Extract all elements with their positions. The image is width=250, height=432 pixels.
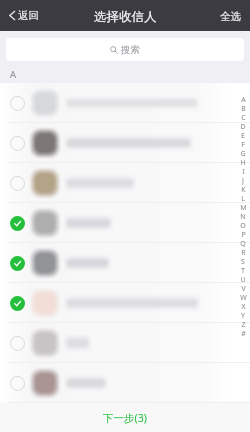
staticText: T: [241, 266, 245, 275]
staticText: Y: [241, 311, 245, 320]
button[interactable]: [0, 203, 250, 243]
staticText: Q: [240, 239, 246, 248]
staticText: X: [241, 302, 246, 311]
button[interactable]: 全选: [209, 1, 250, 30]
staticText: U: [240, 275, 246, 284]
staticText: F: [241, 140, 245, 149]
button[interactable]: [0, 123, 250, 163]
staticText: N: [240, 212, 246, 221]
button[interactable]: [0, 323, 250, 363]
staticText: 返回: [18, 9, 39, 22]
staticText: H: [240, 158, 246, 167]
staticText: M: [240, 203, 247, 212]
staticText: L: [241, 194, 245, 203]
staticText: K: [241, 185, 246, 194]
staticText: 选择收信人: [94, 9, 157, 25]
staticText: 搜索: [121, 44, 140, 56]
staticText: 下一步(3): [103, 411, 147, 425]
button[interactable]: 下一步(3): [0, 403, 250, 432]
staticText: C: [241, 113, 246, 122]
button[interactable]: 搜索: [6, 38, 244, 61]
staticText: B: [241, 104, 246, 113]
staticText: V: [241, 284, 246, 293]
staticText: Z: [241, 320, 246, 329]
staticText: A: [241, 95, 246, 104]
staticText: I: [242, 167, 245, 176]
staticText: S: [241, 257, 245, 266]
staticText: W: [240, 293, 247, 302]
staticText: P: [241, 230, 246, 239]
button[interactable]: [0, 163, 250, 203]
button[interactable]: [0, 363, 250, 403]
staticText: R: [241, 248, 246, 257]
button[interactable]: [0, 283, 250, 323]
staticText: G: [240, 149, 246, 158]
staticText: J: [242, 176, 244, 185]
staticText: #: [241, 329, 246, 338]
staticText: D: [240, 122, 246, 131]
staticText: E: [241, 131, 245, 140]
staticText: A: [10, 68, 17, 81]
staticText: 全选: [220, 10, 241, 23]
button[interactable]: [0, 243, 250, 283]
button[interactable]: 返回: [0, 1, 49, 30]
button[interactable]: Alphabet index: [236, 95, 250, 338]
button[interactable]: [0, 83, 250, 123]
staticText: O: [240, 221, 246, 230]
